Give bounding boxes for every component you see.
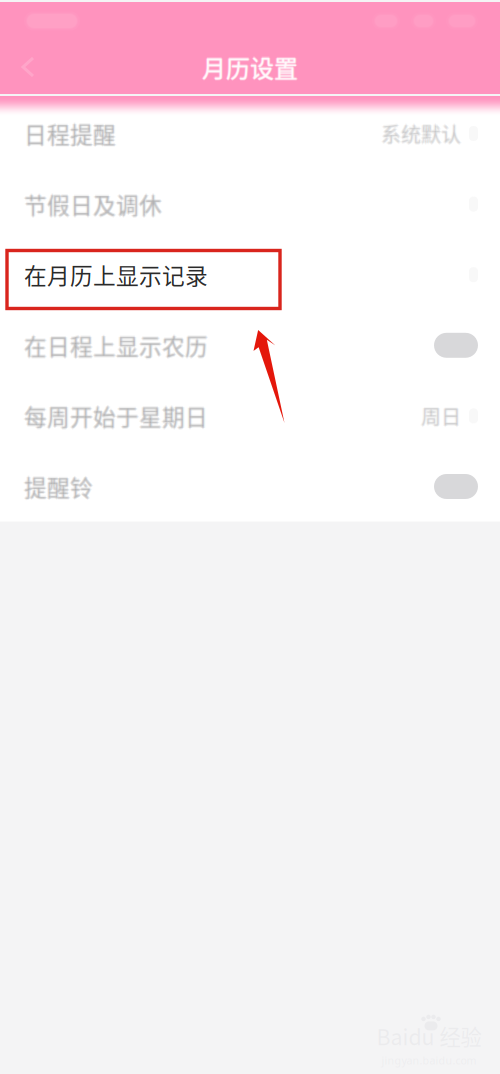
staticText: 节假日及调休 xyxy=(24,186,162,219)
staticText: 节假日及调休 xyxy=(23,188,161,220)
staticText: 提醒铃 xyxy=(23,470,92,503)
staticText: 每周开始于星期日 xyxy=(24,401,208,433)
staticText: 提醒铃 xyxy=(24,470,93,503)
staticText: 月历设置 xyxy=(203,50,299,84)
staticText: Baidu 经验 xyxy=(376,1020,481,1051)
staticText: 每周开始于星期日 xyxy=(24,398,208,431)
staticText: 月历设置 xyxy=(202,51,298,85)
button[interactable]: 日程提醒 xyxy=(0,98,500,169)
staticText: 节假日及调休 xyxy=(24,189,162,222)
staticText: 日程提醒 xyxy=(24,117,116,150)
staticText: 周日 xyxy=(421,401,461,430)
staticText: 系统默认 xyxy=(381,120,461,149)
staticText: 周日 xyxy=(420,401,460,430)
staticText: 在日程上显示农历 xyxy=(25,329,209,362)
staticText: 每周开始于星期日 xyxy=(25,399,209,432)
staticText: 在日程上显示农历 xyxy=(24,330,208,363)
staticText: 每周开始于星期日 xyxy=(23,399,207,432)
staticText: 月历设置 xyxy=(202,48,298,83)
staticText: 在日程上显示农历 xyxy=(24,328,208,360)
staticText: 在月历上显示记录 xyxy=(24,258,208,291)
button[interactable]: Back xyxy=(6,44,52,90)
staticText: 日程提醒 xyxy=(25,117,117,150)
staticText: 每周开始于星期日 xyxy=(24,399,208,432)
staticText: 系统默认 xyxy=(381,119,461,148)
staticText: 系统默认 xyxy=(382,119,462,148)
staticText: 日程提醒 xyxy=(23,117,115,150)
staticText: 提醒铃 xyxy=(25,470,94,503)
staticText: 周日 xyxy=(422,401,462,430)
staticText: 在日程上显示农历 xyxy=(24,329,208,362)
staticText: 日程提醒 xyxy=(24,118,116,151)
staticText: 节假日及调休 xyxy=(25,188,163,220)
button[interactable]: 在日程上显示农历 xyxy=(0,310,500,381)
button[interactable]: 在月历上显示记录 xyxy=(0,239,500,310)
staticText: 系统默认 xyxy=(381,118,461,147)
button[interactable]: 每周开始于星期日 xyxy=(0,381,500,451)
staticText: 日程提醒 xyxy=(24,116,116,149)
button[interactable]: 节假日及调休 xyxy=(0,169,500,239)
staticText: 月历设置 xyxy=(202,50,298,84)
staticText: 系统默认 xyxy=(380,119,460,148)
staticText: 周日 xyxy=(421,403,461,432)
staticText: 提醒铃 xyxy=(24,469,93,502)
staticText: 节假日及调休 xyxy=(24,188,162,220)
button[interactable]: 提醒铃 xyxy=(0,451,500,522)
staticText: 月历设置 xyxy=(201,50,297,84)
staticText: 周日 xyxy=(421,400,461,429)
staticText: 提醒铃 xyxy=(24,471,93,504)
staticText: 在日程上显示农历 xyxy=(23,329,207,362)
